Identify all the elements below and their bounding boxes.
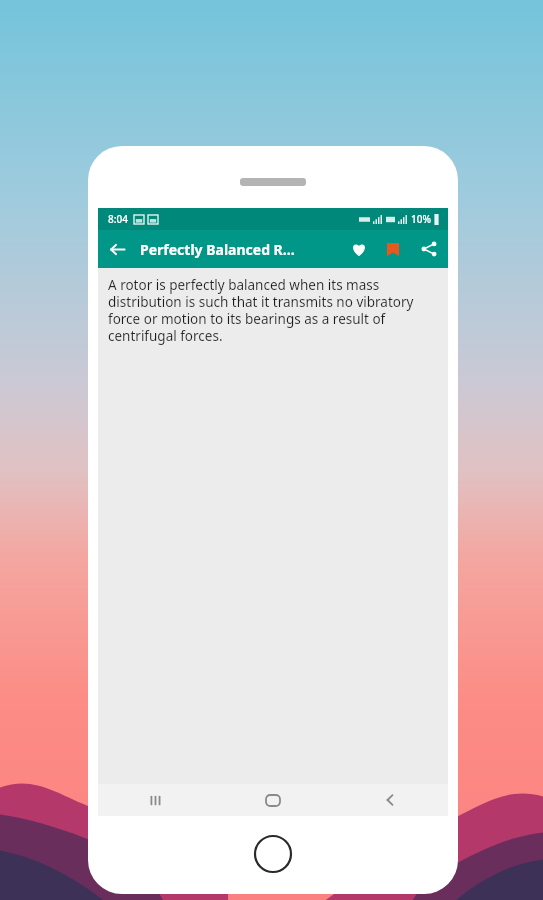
button[interactable]: Home xyxy=(214,784,331,816)
staticText: 10% xyxy=(411,212,431,226)
staticText: A rotor is perfectly balanced when its m… xyxy=(108,276,436,345)
button[interactable]: Back xyxy=(331,784,448,816)
button[interactable]: Favorite xyxy=(342,232,376,266)
button[interactable]: Bookmark xyxy=(376,232,410,266)
button[interactable]: Back xyxy=(98,230,136,268)
button[interactable]: Recents xyxy=(98,784,214,816)
staticText: 8:04 xyxy=(108,212,128,226)
staticText: Perfectly Balanced R... xyxy=(140,240,342,259)
button[interactable]: Share xyxy=(410,230,448,268)
button[interactable]: Home xyxy=(253,834,293,874)
